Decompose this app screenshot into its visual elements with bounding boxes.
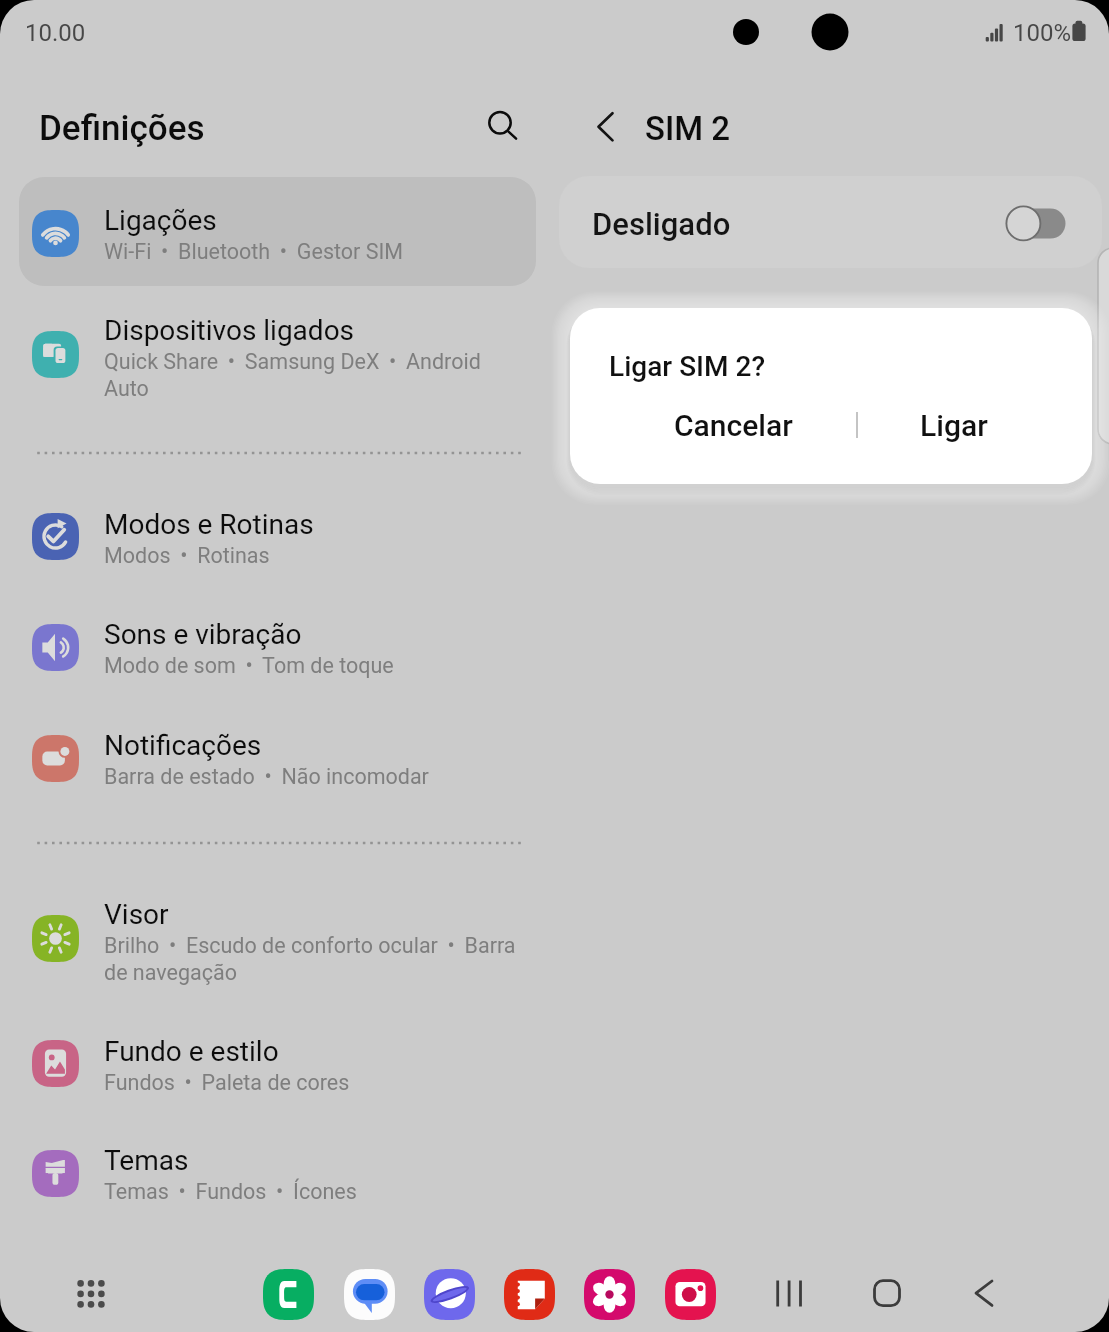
staticText: Modos • Rotinas xyxy=(104,543,270,568)
button[interactable] xyxy=(559,176,1102,268)
button[interactable]: gallery xyxy=(584,1269,635,1320)
button[interactable]: Back xyxy=(578,98,634,154)
button[interactable] xyxy=(19,871,536,1005)
staticText: Sons e vibração xyxy=(104,618,302,651)
button[interactable]: Home xyxy=(863,1271,911,1316)
button[interactable] xyxy=(19,591,536,698)
button[interactable] xyxy=(19,1008,536,1115)
button[interactable] xyxy=(19,177,536,284)
staticText: 100% xyxy=(1013,19,1072,47)
staticText: Fundos • Paleta de cores xyxy=(104,1070,350,1095)
staticText: Cancelar xyxy=(674,408,793,443)
button[interactable]: Search xyxy=(472,95,528,151)
button[interactable]: internet xyxy=(424,1269,475,1320)
button[interactable]: Back xyxy=(960,1271,1008,1316)
staticText: Temas • Fundos • Ícones xyxy=(104,1179,357,1204)
staticText: Modos e Rotinas xyxy=(104,508,314,541)
staticText: Fundo e estilo xyxy=(104,1035,279,1068)
staticText: Auto xyxy=(104,376,149,401)
button[interactable] xyxy=(19,481,536,588)
button[interactable]: phone xyxy=(263,1269,314,1320)
button[interactable]: Cancelar xyxy=(570,393,856,463)
staticText: Ligações xyxy=(104,204,217,237)
staticText: Ligar xyxy=(920,408,988,443)
staticText: Barra de estado • Não incomodar xyxy=(104,764,429,789)
staticText: Brilho • Escudo de conforto ocular • Bar… xyxy=(104,933,516,958)
button[interactable] xyxy=(19,1117,536,1224)
staticText: Ligar SIM 2? xyxy=(609,350,766,383)
button[interactable]: messages xyxy=(344,1269,395,1320)
staticText: 10.00 xyxy=(25,19,86,47)
button[interactable]: camera xyxy=(665,1269,716,1320)
staticText: Notificações xyxy=(104,729,262,762)
staticText: Temas xyxy=(104,1144,189,1177)
staticText: Quick Share • Samsung DeX • Android xyxy=(104,349,481,374)
staticText: Dispositivos ligados xyxy=(104,314,355,347)
staticText: Modo de som • Tom de toque xyxy=(104,653,394,678)
staticText: Visor xyxy=(104,898,169,931)
button[interactable]: notes xyxy=(504,1269,555,1320)
staticText: Definições xyxy=(39,108,205,149)
button[interactable]: Ligar xyxy=(857,393,1092,463)
staticText: Wi-Fi • Bluetooth • Gestor SIM xyxy=(104,239,404,264)
button[interactable] xyxy=(19,287,536,421)
staticText: de navegação xyxy=(104,960,237,985)
staticText: SIM 2 xyxy=(645,109,731,148)
button[interactable]: Apps xyxy=(69,1271,115,1317)
button[interactable]: Recents xyxy=(764,1271,812,1316)
button[interactable] xyxy=(19,702,536,809)
staticText: Desligado xyxy=(592,206,731,242)
